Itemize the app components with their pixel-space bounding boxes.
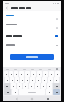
button[interactable] xyxy=(54,77,59,83)
button[interactable] xyxy=(47,83,52,89)
button[interactable]: Back xyxy=(15,97,19,101)
button[interactable] xyxy=(9,71,13,77)
button[interactable] xyxy=(49,71,54,77)
button[interactable] xyxy=(41,83,46,89)
button[interactable] xyxy=(10,77,14,83)
button[interactable] xyxy=(5,77,9,83)
button[interactable] xyxy=(31,71,36,77)
button[interactable]: Back xyxy=(5,6,9,10)
button[interactable] xyxy=(6,43,58,47)
button[interactable]: Symbols xyxy=(4,89,11,95)
button[interactable] xyxy=(25,71,30,77)
button[interactable] xyxy=(30,77,35,83)
button[interactable]: Keyboard settings xyxy=(56,68,58,70)
button[interactable]: Shift xyxy=(4,83,10,89)
button[interactable] xyxy=(10,54,54,60)
button[interactable] xyxy=(35,83,40,89)
button[interactable] xyxy=(42,77,47,83)
button[interactable] xyxy=(11,83,16,89)
button[interactable]: Space xyxy=(19,89,45,95)
button[interactable] xyxy=(48,77,53,83)
button[interactable]: Enter xyxy=(53,89,60,95)
button[interactable] xyxy=(15,77,19,83)
button[interactable] xyxy=(6,24,58,30)
button[interactable] xyxy=(14,71,18,77)
button[interactable] xyxy=(25,77,29,83)
button[interactable] xyxy=(37,71,42,77)
button[interactable] xyxy=(23,83,28,89)
button[interactable] xyxy=(43,71,48,77)
button[interactable] xyxy=(55,71,60,77)
button[interactable] xyxy=(6,15,58,21)
button[interactable] xyxy=(4,71,8,77)
button[interactable]: Recents xyxy=(46,97,50,101)
button[interactable] xyxy=(20,77,24,83)
button[interactable] xyxy=(36,77,41,83)
button[interactable]: Home xyxy=(30,97,34,101)
button[interactable]: Period xyxy=(46,89,52,95)
button[interactable] xyxy=(17,83,22,89)
button[interactable]: Backspace xyxy=(53,83,60,89)
button[interactable] xyxy=(19,71,24,77)
button[interactable]: Comma xyxy=(12,89,18,95)
button[interactable] xyxy=(6,33,58,38)
button[interactable] xyxy=(29,83,34,89)
